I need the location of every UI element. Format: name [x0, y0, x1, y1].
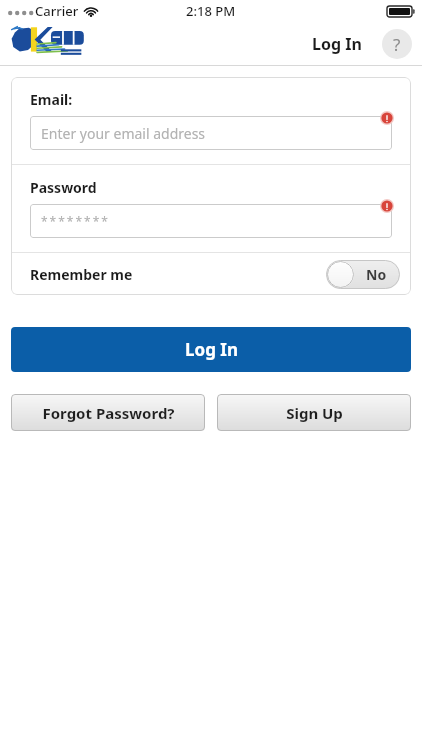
button[interactable]: Help: [382, 29, 412, 59]
staticText: ********: [41, 213, 110, 229]
staticText: No: [366, 265, 387, 284]
staticText: Log In: [312, 33, 362, 55]
staticText: ?: [393, 33, 401, 56]
button[interactable]: Log In: [11, 327, 411, 372]
staticText: Log In: [185, 338, 238, 361]
staticText: Email:: [30, 90, 73, 109]
staticText: Remember me: [30, 265, 133, 284]
staticText: Enter your email address: [41, 124, 206, 143]
button[interactable]: Log In: [306, 27, 368, 61]
button[interactable]: Enter your email address: [30, 116, 392, 150]
button[interactable]: Remember me: [11, 253, 411, 295]
staticText: Carrier: [35, 2, 79, 20]
button[interactable]: Forgot Password?: [11, 394, 205, 431]
button[interactable]: Remember me toggle, off: [326, 260, 400, 289]
button[interactable]: Sign Up: [217, 394, 411, 431]
button[interactable]: ********: [30, 204, 392, 238]
staticText: Forgot Password?: [42, 403, 175, 423]
staticText: Password: [30, 178, 97, 197]
staticText: Sign Up: [286, 403, 343, 423]
staticText: 2:18 PM: [186, 2, 236, 20]
